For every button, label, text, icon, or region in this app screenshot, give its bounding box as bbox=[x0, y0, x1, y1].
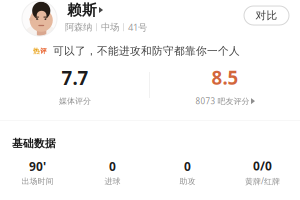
staticText: 90' bbox=[29, 158, 46, 174]
button[interactable]: 8.5 bbox=[150, 65, 300, 106]
staticText: 可以了，不能进攻和防守都靠你一个人 bbox=[53, 44, 240, 58]
staticText: 中场 bbox=[101, 21, 119, 33]
staticText: 41号 bbox=[128, 21, 147, 33]
staticText: 赖斯 bbox=[67, 1, 97, 19]
staticText: 对比 bbox=[255, 9, 277, 22]
button[interactable]: 赖斯 bbox=[67, 1, 103, 19]
staticText: 0 bbox=[109, 158, 116, 174]
staticText: 热 bbox=[33, 47, 40, 55]
button[interactable]: 对比 bbox=[244, 6, 289, 25]
staticText: 阿森纳 bbox=[65, 21, 92, 33]
staticText: 出场时间 bbox=[21, 176, 53, 186]
staticText: 黄牌/红牌 bbox=[245, 176, 280, 186]
staticText: 媒体评分 bbox=[59, 96, 91, 106]
button[interactable]: 热 bbox=[33, 44, 240, 58]
staticText: 评 bbox=[40, 47, 47, 55]
staticText: 7.7 bbox=[61, 65, 88, 90]
staticText: 0/0 bbox=[253, 158, 272, 174]
staticText: 0 bbox=[184, 158, 191, 174]
staticText: 8.5 bbox=[211, 65, 238, 90]
staticText: 基础数据 bbox=[12, 137, 56, 150]
staticText: 助攻 bbox=[179, 176, 195, 186]
staticText: 8073 吧友评分 bbox=[195, 96, 249, 106]
staticText: 进球 bbox=[104, 176, 120, 186]
